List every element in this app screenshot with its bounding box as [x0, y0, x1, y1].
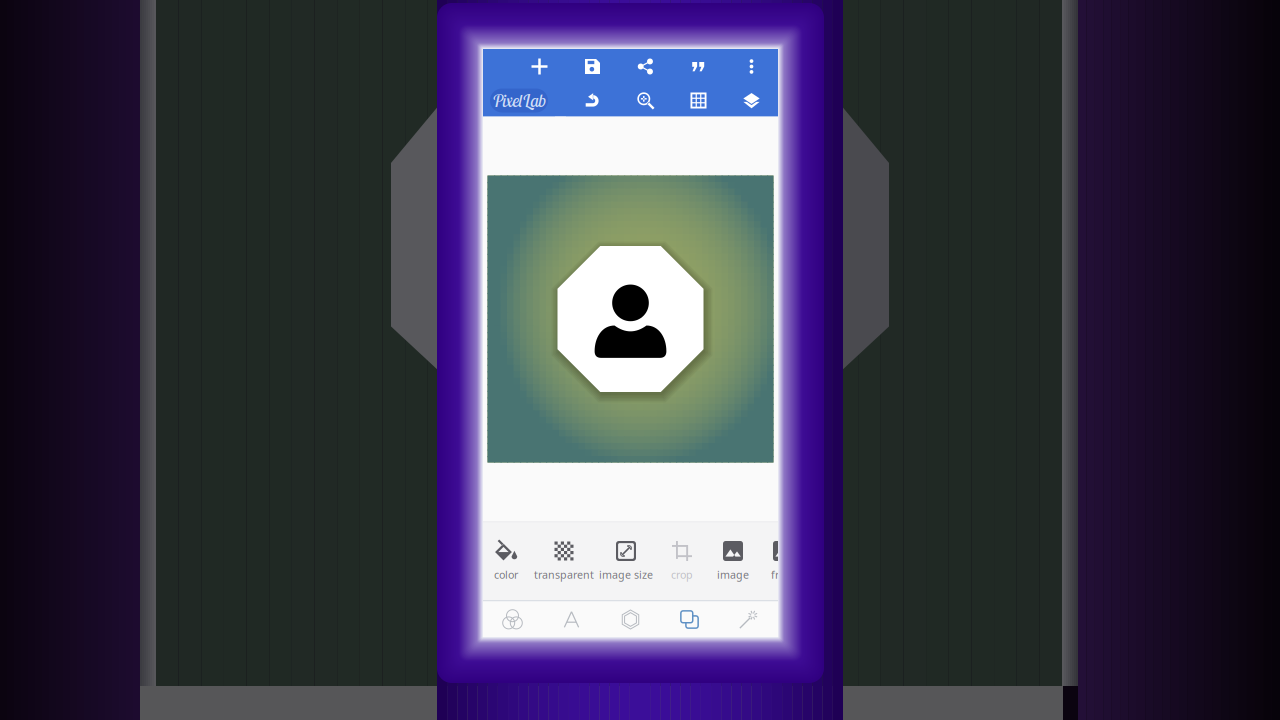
staticText: PixelLab	[492, 90, 545, 111]
button[interactable]: Layers	[660, 601, 719, 637]
button[interactable]: Grid	[672, 84, 725, 116]
staticText: image size	[599, 567, 653, 582]
button[interactable]: Effects	[719, 601, 778, 637]
button[interactable]: Undo	[566, 84, 619, 116]
staticText: color	[494, 567, 518, 582]
button[interactable]: Colour mix	[483, 601, 542, 637]
staticText: transparent	[534, 567, 594, 582]
button[interactable]: Add	[513, 50, 566, 82]
button[interactable]: PixelLab	[483, 84, 555, 116]
button[interactable]: Shape	[601, 601, 660, 637]
button[interactable]: crop	[646, 536, 718, 584]
staticText: crop	[671, 567, 693, 582]
button[interactable]: image size	[590, 536, 662, 584]
button[interactable]: Layers	[725, 84, 778, 116]
button[interactable]: image	[697, 536, 769, 584]
button[interactable]: color	[470, 536, 542, 584]
staticText: image	[717, 567, 749, 582]
button[interactable]: Text	[542, 601, 601, 637]
button[interactable]: Zoom	[619, 84, 672, 116]
button[interactable]: Save	[566, 50, 619, 82]
button[interactable]: Quote	[672, 50, 725, 82]
button[interactable]: from	[747, 536, 819, 584]
button[interactable]: transparent	[528, 536, 600, 584]
staticText: from	[771, 567, 795, 582]
button[interactable]: More	[725, 50, 778, 82]
button[interactable]: Share	[619, 50, 672, 82]
